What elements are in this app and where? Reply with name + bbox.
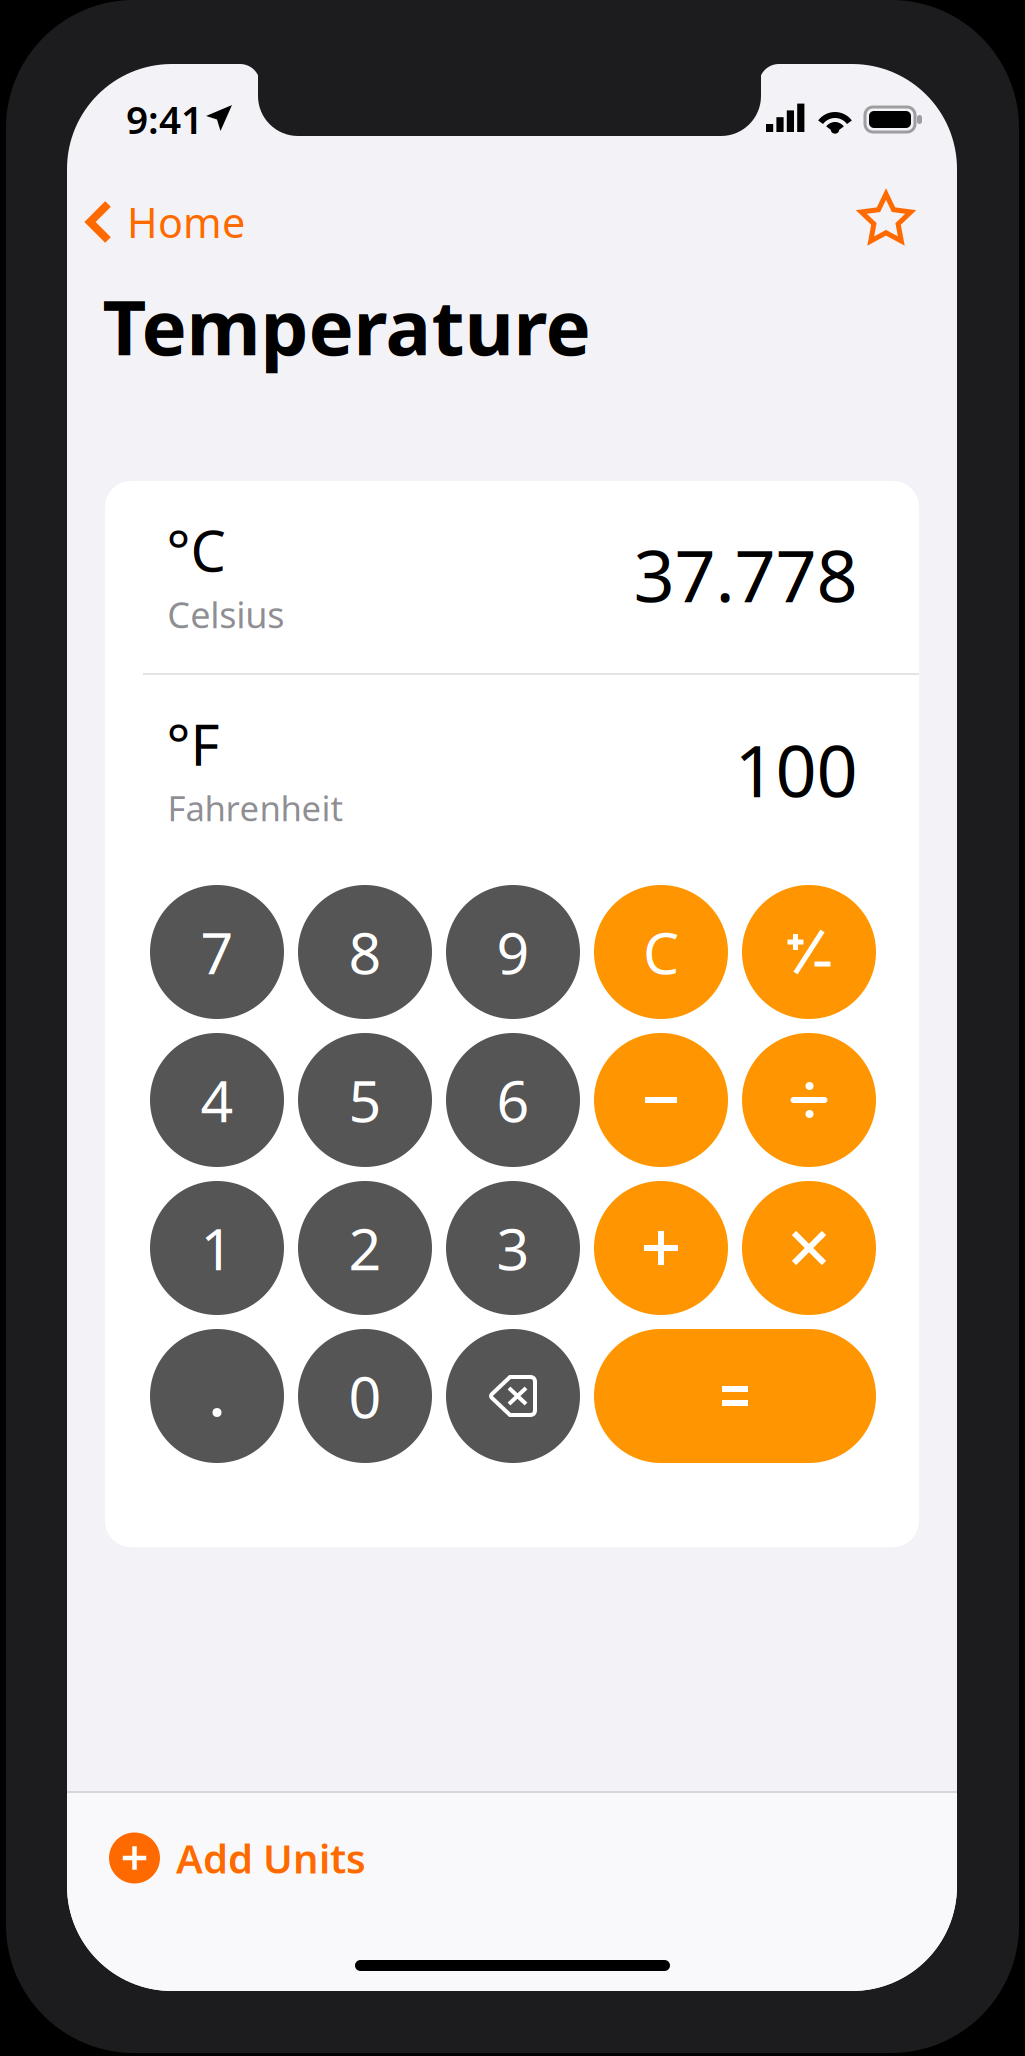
button[interactable]: 0 bbox=[298, 1329, 432, 1463]
button[interactable]: Favorite bbox=[856, 190, 916, 250]
button[interactable]: Add Units bbox=[109, 1832, 529, 1884]
staticText: Add Units bbox=[176, 1831, 366, 1884]
staticText: Celsius bbox=[167, 590, 284, 638]
button[interactable]: 2 bbox=[298, 1181, 432, 1315]
button[interactable]: Delete bbox=[446, 1329, 580, 1463]
button[interactable]: 1 bbox=[150, 1181, 284, 1315]
staticText: 7 bbox=[200, 914, 233, 990]
button[interactable]: 5 bbox=[298, 1033, 432, 1167]
button[interactable]: 4 bbox=[150, 1033, 284, 1167]
button[interactable]: 7 bbox=[150, 885, 284, 1019]
button[interactable]: Equals bbox=[594, 1329, 876, 1463]
staticText: °C bbox=[166, 513, 225, 587]
staticText: 3 bbox=[496, 1210, 529, 1286]
button[interactable]: Divide bbox=[742, 1033, 876, 1167]
staticText: 2 bbox=[348, 1210, 381, 1286]
button[interactable]: Plus minus bbox=[742, 885, 876, 1019]
staticText: 8 bbox=[348, 914, 381, 990]
button[interactable]: 6 bbox=[446, 1033, 580, 1167]
staticText: 6 bbox=[496, 1062, 529, 1138]
button[interactable]: °C bbox=[105, 481, 919, 673]
staticText: 1 bbox=[200, 1210, 233, 1286]
button[interactable]: Home bbox=[84, 192, 284, 252]
button[interactable]: Plus bbox=[594, 1181, 728, 1315]
staticText: °F bbox=[166, 707, 219, 781]
button[interactable]: 3 bbox=[446, 1181, 580, 1315]
staticText: Fahrenheit bbox=[167, 785, 343, 831]
button[interactable]: 9 bbox=[446, 885, 580, 1019]
staticText: 37.778 bbox=[634, 526, 858, 622]
staticText: 0 bbox=[348, 1358, 381, 1434]
staticText: 100 bbox=[735, 721, 858, 817]
staticText: 5 bbox=[348, 1062, 381, 1138]
staticText: Home bbox=[127, 195, 245, 249]
button[interactable]: 8 bbox=[298, 885, 432, 1019]
button[interactable]: Multiply bbox=[742, 1181, 876, 1315]
button[interactable]: C bbox=[594, 885, 728, 1019]
staticText: Temperature bbox=[102, 275, 590, 376]
staticText: C bbox=[643, 914, 679, 990]
button[interactable]: °F bbox=[105, 675, 919, 867]
button[interactable]: Minus bbox=[594, 1033, 728, 1167]
staticText: 9 bbox=[496, 914, 529, 990]
staticText: 9:41 bbox=[126, 93, 203, 145]
staticText: 4 bbox=[200, 1062, 233, 1138]
button[interactable]: Decimal point bbox=[150, 1329, 284, 1463]
